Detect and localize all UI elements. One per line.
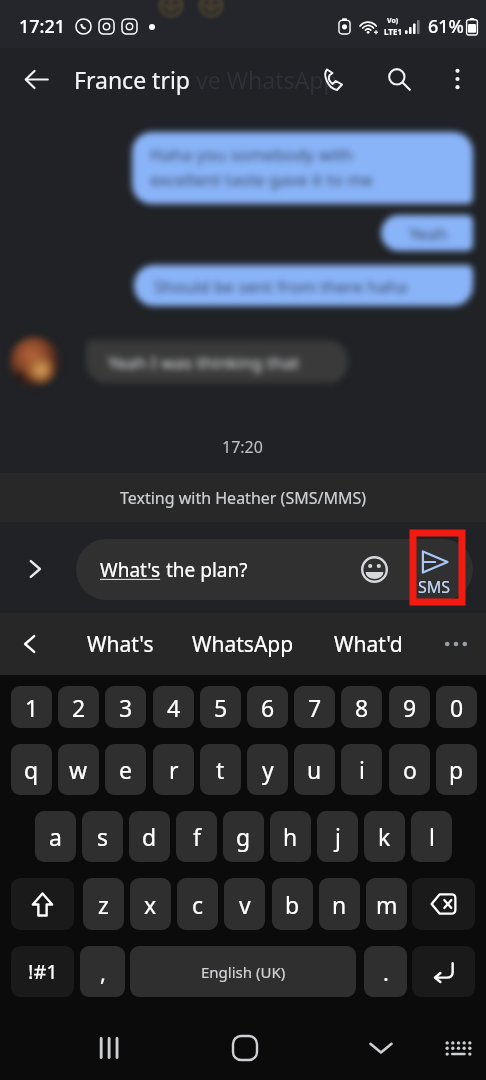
button[interactable]: x (130, 878, 171, 930)
button[interactable]: c (177, 878, 218, 930)
button[interactable]: u (294, 744, 335, 795)
staticText: 2 (72, 692, 86, 723)
staticText: 9 (403, 692, 417, 723)
button[interactable]: 8 (341, 686, 382, 728)
button[interactable]: Hide keyboard (359, 1026, 403, 1070)
button[interactable]: Yeah I was thinking that (86, 340, 348, 383)
staticText: 4 (167, 692, 181, 723)
button[interactable]: p (436, 744, 477, 795)
staticText: SMS (418, 576, 451, 598)
button[interactable]: Enter (412, 946, 475, 997)
button[interactable]: 2 (58, 686, 99, 728)
button[interactable]: What's (74, 621, 167, 667)
button[interactable]: Shift (11, 878, 74, 930)
staticText: v (239, 889, 251, 920)
button[interactable]: s (82, 811, 123, 862)
button[interactable]: l (411, 811, 452, 862)
staticText: WhatsApp (192, 630, 294, 659)
button[interactable]: Should be sent from there haha (134, 265, 473, 306)
staticText: p (449, 754, 464, 785)
staticText: 3 (119, 692, 133, 723)
button[interactable]: 3 (105, 686, 146, 728)
staticText: , (100, 957, 106, 987)
button[interactable]: r (153, 744, 194, 795)
button[interactable]: Haha you somebody with (132, 132, 473, 204)
button[interactable]: Back (13, 56, 59, 102)
button[interactable]: w (58, 744, 99, 795)
button[interactable]: Search (376, 56, 422, 102)
staticText: i (359, 754, 365, 785)
staticText: t (216, 754, 225, 785)
button[interactable]: a (35, 811, 76, 862)
button[interactable]: . (364, 946, 407, 997)
staticText: k (378, 821, 391, 852)
button[interactable]: j (317, 811, 358, 862)
button[interactable]: i (341, 744, 382, 795)
button[interactable]: 4 (153, 686, 194, 728)
button[interactable]: !#1 (11, 946, 74, 997)
staticText: Vo) (387, 16, 399, 26)
staticText: c (192, 889, 204, 920)
button[interactable]: b (272, 878, 313, 930)
button[interactable]: f (176, 811, 217, 862)
button[interactable]: Previous suggestions (8, 622, 52, 666)
staticText: LTE1 (384, 26, 402, 37)
button[interactable]: v (224, 878, 265, 930)
staticText: English (UK) (201, 962, 286, 982)
staticText: Should be sent from there haha (154, 275, 408, 298)
button[interactable]: More suggestions (434, 622, 478, 666)
staticText: 17:21 (19, 14, 66, 39)
staticText: b (285, 889, 300, 920)
button[interactable]: h (270, 811, 311, 862)
button[interactable]: , (80, 946, 125, 997)
button[interactable]: More options (434, 56, 480, 102)
button[interactable]: English (UK) (130, 946, 356, 997)
staticText: x (144, 889, 157, 920)
button[interactable]: Send SMS (408, 550, 460, 598)
button[interactable]: Home (223, 1026, 267, 1070)
button[interactable]: Call (311, 56, 357, 102)
button[interactable]: 9 (389, 686, 430, 728)
staticText: !#1 (28, 958, 58, 985)
button[interactable]: 6 (247, 686, 288, 728)
button[interactable]: 7 (294, 686, 335, 728)
staticText: j (335, 821, 341, 852)
button[interactable]: Recent apps (87, 1026, 131, 1070)
staticText: a (49, 821, 62, 852)
button[interactable]: Switch keyboard (436, 1026, 480, 1070)
button[interactable]: France trip (74, 64, 190, 95)
staticText: the plan? (161, 557, 248, 583)
staticText: 6 (261, 692, 275, 723)
button[interactable]: Show more options (15, 549, 55, 589)
button[interactable]: g (223, 811, 264, 862)
button[interactable]: z (83, 878, 124, 930)
button[interactable]: e (105, 744, 146, 795)
staticText: 61% (428, 14, 464, 39)
staticText: 7 (308, 692, 322, 723)
staticText: . (383, 957, 389, 987)
staticText: f (193, 821, 201, 852)
button[interactable]: Choose emoji (359, 554, 390, 585)
button[interactable]: y (247, 744, 288, 795)
staticText: What's (100, 557, 161, 583)
staticText: n (332, 889, 347, 920)
button[interactable]: n (319, 878, 360, 930)
staticText: ve WhatsApp (196, 64, 338, 95)
button[interactable]: d (129, 811, 170, 862)
staticText: Yeah I was thinking that (108, 351, 300, 374)
button[interactable]: What'd (321, 621, 416, 667)
button[interactable]: Yeah (381, 215, 473, 251)
staticText: e (119, 754, 132, 785)
button[interactable]: 0 (436, 686, 477, 728)
button[interactable]: k (364, 811, 405, 862)
button[interactable]: t (200, 744, 241, 795)
button[interactable]: 1 (11, 686, 52, 728)
button[interactable]: m (366, 878, 407, 930)
staticText: 17:20 (222, 436, 263, 458)
button[interactable]: 5 (200, 686, 241, 728)
staticText: 5 (214, 692, 228, 723)
button[interactable]: WhatsApp (179, 621, 307, 667)
button[interactable]: q (11, 744, 52, 795)
button[interactable]: o (389, 744, 430, 795)
button[interactable]: Backspace (412, 878, 475, 930)
